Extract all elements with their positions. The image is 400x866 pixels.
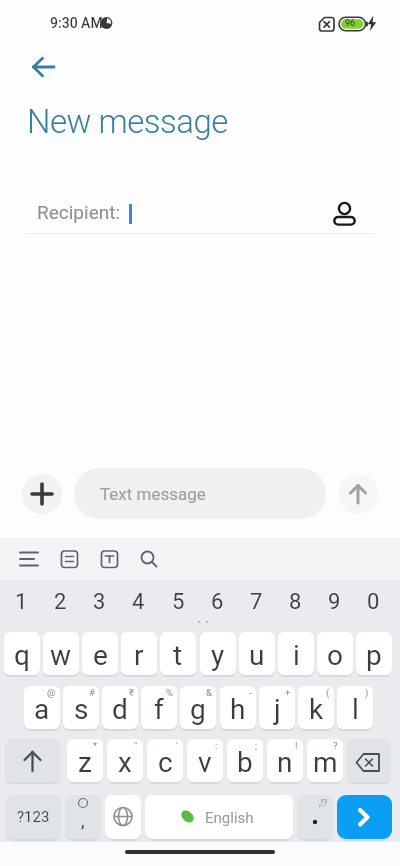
button[interactable]: 2 xyxy=(40,584,80,619)
button[interactable]: 0 xyxy=(353,584,393,619)
button[interactable]: h xyxy=(220,686,256,729)
staticText: # xyxy=(89,687,95,698)
staticText: q xyxy=(14,639,30,672)
button[interactable]: 4 xyxy=(118,584,158,619)
button[interactable]: , xyxy=(65,795,101,839)
staticText: d xyxy=(112,693,128,726)
button[interactable]: 5 xyxy=(158,584,198,619)
staticText: y xyxy=(211,639,225,672)
staticText: 1 xyxy=(15,589,28,615)
staticText: 3 xyxy=(93,589,106,615)
staticText: n xyxy=(277,746,293,779)
button[interactable] xyxy=(135,545,165,573)
staticText: ?123 xyxy=(17,808,50,826)
staticText: 2 xyxy=(54,589,67,615)
staticText: e xyxy=(93,639,108,672)
staticText: New message xyxy=(27,102,228,141)
button[interactable] xyxy=(105,795,141,839)
button[interactable] xyxy=(328,195,360,229)
staticText: l xyxy=(352,693,359,726)
button[interactable]: 1 xyxy=(1,584,41,619)
staticText: % xyxy=(166,687,173,698)
button[interactable]: n xyxy=(267,739,303,782)
button[interactable] xyxy=(95,545,125,573)
button[interactable]: l xyxy=(337,686,373,729)
button[interactable] xyxy=(338,474,378,514)
button[interactable]: k xyxy=(298,686,334,729)
staticText: m xyxy=(313,746,338,779)
button[interactable]: English xyxy=(145,795,293,839)
button[interactable]: o xyxy=(317,632,353,675)
button[interactable]: c xyxy=(147,739,183,782)
button[interactable]: Text message xyxy=(74,468,326,519)
button[interactable]: w xyxy=(43,632,79,675)
button[interactable]: m xyxy=(307,739,343,782)
staticText: ' xyxy=(176,740,178,751)
button[interactable] xyxy=(20,50,64,84)
button[interactable] xyxy=(347,739,391,782)
button[interactable]: r xyxy=(121,632,157,675)
button[interactable]: t xyxy=(160,632,196,675)
button[interactable]: 7 xyxy=(236,584,276,619)
button[interactable]: y xyxy=(200,632,236,675)
button[interactable] xyxy=(55,545,85,573)
staticText: 96 xyxy=(345,18,356,29)
button[interactable] xyxy=(337,795,392,839)
button[interactable]: j xyxy=(259,686,295,729)
button[interactable]: g xyxy=(180,686,216,729)
staticText: 5 xyxy=(172,589,185,615)
staticText: g xyxy=(190,693,206,726)
staticText: ? xyxy=(333,740,338,751)
staticText: f xyxy=(154,693,164,726)
button[interactable]: d xyxy=(102,686,138,729)
staticText: ₹ xyxy=(129,687,134,698)
button[interactable]: v xyxy=(187,739,223,782)
staticText: ( xyxy=(326,687,330,698)
staticText: 8 xyxy=(289,589,302,615)
staticText: - xyxy=(249,687,252,698)
button[interactable]: p xyxy=(356,632,392,675)
button[interactable] xyxy=(22,474,62,514)
staticText: k xyxy=(309,693,324,726)
staticText: 4 xyxy=(132,589,145,615)
button[interactable]: a xyxy=(24,686,60,729)
button[interactable]: q xyxy=(4,632,40,675)
staticText: h xyxy=(230,693,246,726)
staticText: @ xyxy=(47,687,56,698)
staticText: x xyxy=(118,746,132,779)
button[interactable]: e xyxy=(82,632,118,675)
button[interactable]: b xyxy=(227,739,263,782)
staticText: b xyxy=(237,746,253,779)
button[interactable]: ?123 xyxy=(6,795,61,839)
button[interactable]: 6 xyxy=(197,584,237,619)
staticText: o xyxy=(327,639,343,672)
staticText: English xyxy=(205,809,254,827)
button[interactable] xyxy=(14,545,44,573)
button[interactable]: z xyxy=(67,739,103,782)
staticText: & xyxy=(206,687,212,698)
button[interactable]: u xyxy=(239,632,275,675)
staticText: : xyxy=(215,740,218,751)
staticText: c xyxy=(158,746,173,779)
button[interactable] xyxy=(5,739,60,782)
staticText: Recipient: xyxy=(37,201,121,223)
button[interactable]: 8 xyxy=(275,584,315,619)
button[interactable]: i xyxy=(278,632,314,675)
staticText: z xyxy=(78,746,92,779)
button[interactable]: 9 xyxy=(314,584,354,619)
staticText: ; xyxy=(255,740,258,751)
staticText: ) xyxy=(365,687,369,698)
button[interactable]: f xyxy=(141,686,177,729)
button[interactable]: 3 xyxy=(79,584,119,619)
staticText: i xyxy=(293,639,300,672)
staticText: u xyxy=(249,639,265,672)
staticText: , xyxy=(81,810,85,831)
staticText: t xyxy=(173,639,183,672)
staticText: + xyxy=(285,687,291,698)
button[interactable]: ,!? xyxy=(297,795,333,839)
staticText: w xyxy=(50,639,72,672)
staticText: 6 xyxy=(211,589,224,615)
button[interactable]: x xyxy=(107,739,143,782)
button[interactable]: s xyxy=(63,686,99,729)
staticText: j xyxy=(274,693,281,726)
